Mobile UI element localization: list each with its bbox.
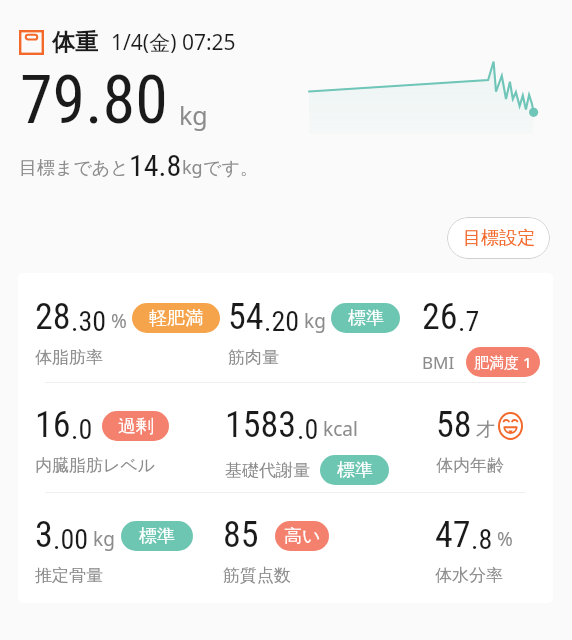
staticText: 標準 <box>139 525 175 548</box>
staticText: kg <box>179 98 208 132</box>
staticText: 目標まであと <box>19 157 129 180</box>
staticText: .0 <box>297 413 319 446</box>
staticText: 26 <box>422 296 458 338</box>
button[interactable]: 標準 <box>331 303 400 333</box>
staticText: 14.8 <box>129 148 182 183</box>
staticText: 1/4(金) 07:25 <box>111 28 236 57</box>
staticText: 体内年齢 <box>436 455 504 476</box>
staticText: 1583 <box>225 404 297 446</box>
staticText: 28 <box>35 296 71 338</box>
staticText: .20 <box>264 305 300 338</box>
button[interactable]: 54 <box>228 296 400 368</box>
staticText: 3 <box>35 514 53 556</box>
staticText: 16 <box>35 404 71 446</box>
staticText: .7 <box>458 305 480 338</box>
staticText: .0 <box>71 413 93 446</box>
staticText: kg <box>304 308 326 334</box>
staticText: kcal <box>323 416 358 442</box>
staticText: 才 <box>476 418 495 442</box>
staticText: .00 <box>53 523 89 556</box>
button[interactable]: 26 <box>422 296 540 377</box>
staticText: 高い <box>284 525 321 548</box>
button[interactable]: 1583 <box>225 404 389 485</box>
staticText: 体水分率 <box>435 565 503 586</box>
button[interactable]: 標準 <box>121 521 193 551</box>
staticText: kg <box>182 155 203 180</box>
staticText: 58 <box>436 404 472 446</box>
button[interactable]: 85 <box>223 514 329 586</box>
staticText: です。 <box>203 157 258 180</box>
staticText: 筋肉量 <box>228 347 279 368</box>
staticText: 過剰 <box>118 415 154 438</box>
button[interactable]: 3 <box>35 514 193 586</box>
staticText: 目標設定 <box>463 227 535 250</box>
button[interactable]: 28 <box>35 296 220 368</box>
staticText: 標準 <box>348 307 384 330</box>
staticText: kg <box>93 526 115 552</box>
staticText: 79.80 <box>20 62 168 139</box>
staticText: 標準 <box>337 459 373 482</box>
staticText: 47 <box>435 514 471 556</box>
staticText: 推定骨量 <box>35 565 103 586</box>
staticText: 軽肥満 <box>149 307 203 330</box>
button[interactable]: 標準 <box>320 455 389 485</box>
staticText: 基礎代謝量 <box>225 460 310 481</box>
other: Weight scale <box>19 30 44 55</box>
button[interactable]: 肥満度 1 <box>466 347 540 377</box>
button[interactable]: 目標設定 <box>447 217 550 259</box>
staticText: 体脂肪率 <box>35 347 103 368</box>
button[interactable]: 47 <box>435 514 513 586</box>
staticText: 肥満度 1 <box>474 352 532 372</box>
staticText: BMI <box>422 351 455 374</box>
staticText: 85 <box>223 514 259 556</box>
button[interactable]: 軽肥満 <box>132 303 220 333</box>
staticText: 内臓脂肪レベル <box>35 455 156 476</box>
button[interactable]: 過剰 <box>102 411 169 441</box>
button[interactable]: 高い <box>275 521 329 551</box>
staticText: 54 <box>228 296 264 338</box>
button[interactable]: 58 <box>436 404 523 476</box>
staticText: % <box>111 308 127 334</box>
staticText: % <box>497 526 513 552</box>
staticText: .30 <box>71 305 107 338</box>
staticText: 体重 <box>52 28 98 57</box>
button[interactable]: 16 <box>35 404 169 476</box>
staticText: 筋質点数 <box>223 565 291 586</box>
staticText: .8 <box>471 523 493 556</box>
